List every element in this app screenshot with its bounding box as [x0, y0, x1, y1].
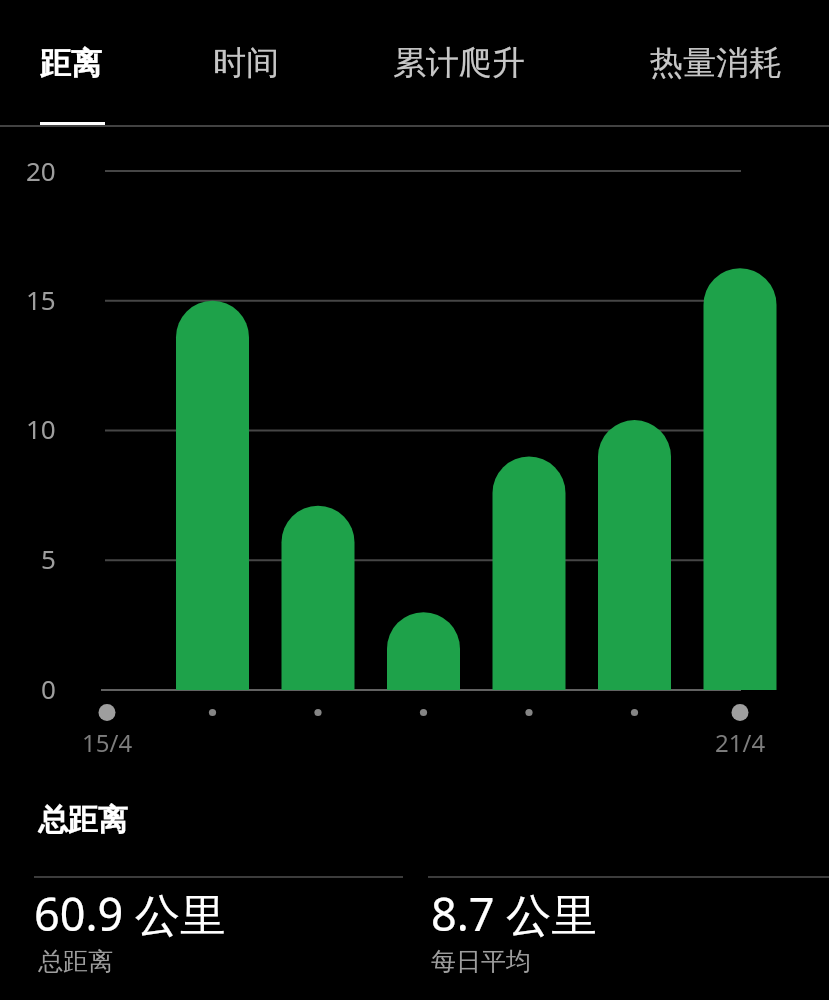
staticText: 10	[26, 411, 56, 446]
staticText: 21/4	[715, 726, 766, 759]
staticText: 总距离	[38, 946, 113, 977]
button[interactable]: 8.7 公里	[431, 883, 597, 943]
staticText: 累计爬升	[393, 42, 525, 84]
staticText: 0	[41, 671, 56, 706]
staticText: 5	[41, 541, 56, 576]
staticText: 15/4	[82, 726, 133, 759]
button[interactable]: 60.9 公里	[34, 883, 225, 943]
button[interactable]: 距离	[40, 0, 102, 126]
button[interactable]: 时间	[213, 0, 279, 126]
staticText: 时间	[213, 42, 279, 84]
staticText: 15	[26, 282, 56, 317]
staticText: 距离	[40, 44, 102, 83]
staticText: 60.9 公里	[34, 883, 225, 943]
button[interactable]: 热量消耗	[650, 0, 782, 126]
staticText: 8.7 公里	[431, 883, 597, 943]
staticText: 20	[26, 153, 56, 188]
staticText: 每日平均	[431, 946, 531, 977]
button[interactable]: 累计爬升	[393, 0, 525, 126]
staticText: 热量消耗	[650, 42, 782, 84]
staticText: 总距离	[38, 801, 128, 839]
